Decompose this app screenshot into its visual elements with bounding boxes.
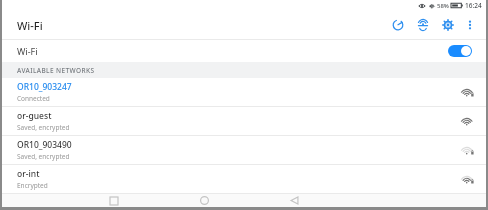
staticText: or-int: [17, 168, 40, 180]
staticText: 58%: [437, 2, 449, 10]
staticText: Saved, encrypted: [17, 123, 70, 132]
button[interactable]: More options: [460, 15, 480, 35]
staticText: Encrypted: [17, 181, 48, 190]
staticText: Connected: [17, 94, 50, 103]
button[interactable]: OR10_903490: [2, 136, 486, 164]
button[interactable]: Home: [194, 194, 214, 207]
button[interactable]: or-int: [2, 165, 486, 193]
staticText: 16:24: [465, 1, 482, 10]
button[interactable]: OR10_903247: [2, 78, 486, 106]
staticText: OR10_903490: [17, 139, 72, 151]
button[interactable]: Wi-Fi: [2, 40, 486, 62]
button[interactable]: Refresh: [387, 14, 409, 36]
staticText: AVAILABLE NETWORKS: [17, 66, 95, 75]
staticText: or-guest: [17, 110, 52, 122]
button[interactable]: Wi-Fi Direct: [412, 14, 434, 36]
staticText: Wi-Fi: [17, 45, 38, 57]
button[interactable]: Settings: [437, 14, 459, 36]
button[interactable]: or-guest: [2, 107, 486, 135]
staticText: Wi-Fi: [17, 18, 43, 33]
staticText: Saved, encrypted: [17, 152, 70, 161]
button[interactable]: Recents: [104, 194, 124, 207]
button[interactable]: Back: [284, 194, 304, 207]
staticText: OR10_903247: [17, 81, 72, 93]
